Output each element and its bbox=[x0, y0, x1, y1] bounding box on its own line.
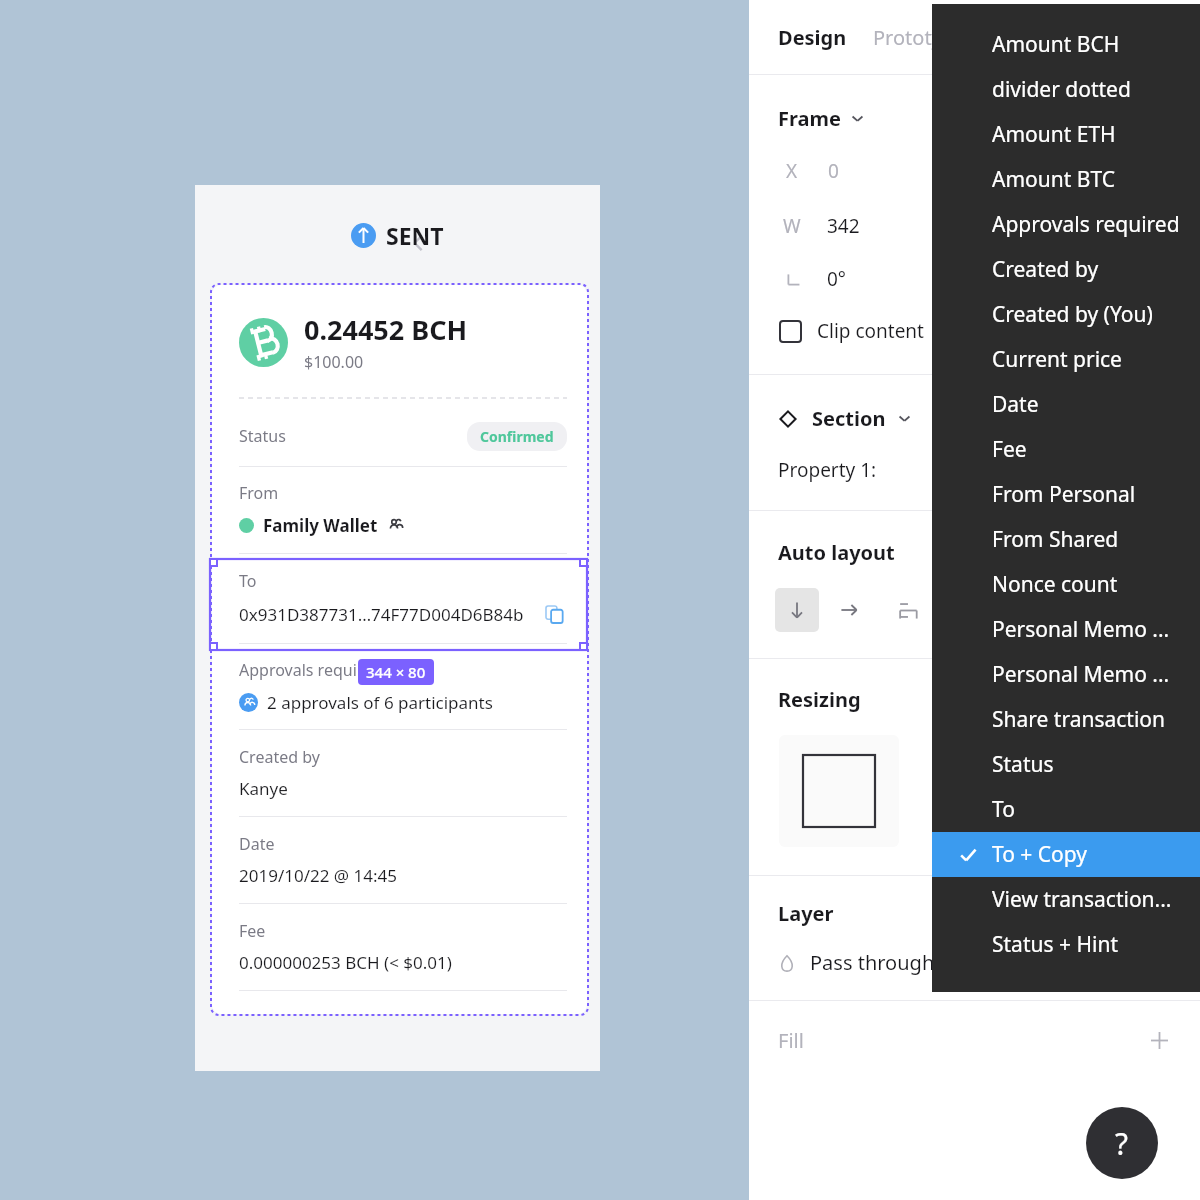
button[interactable]: Date bbox=[212, 817, 587, 904]
staticText: W bbox=[783, 213, 801, 239]
staticText: Date bbox=[992, 390, 1039, 419]
staticText: To bbox=[992, 795, 1015, 824]
staticText: 0.000000253 BCH (< $0.01) bbox=[239, 951, 452, 974]
button[interactable]: divider dotted bbox=[932, 67, 1200, 112]
staticText: $100.00 bbox=[304, 351, 364, 373]
button[interactable]: Help bbox=[1086, 1107, 1158, 1179]
staticText: Status bbox=[992, 750, 1054, 779]
button[interactable]: Copy address bbox=[541, 601, 567, 627]
staticText: Created by bbox=[992, 255, 1099, 284]
staticText: From Personal bbox=[992, 480, 1136, 509]
button[interactable]: Back bbox=[401, 225, 437, 261]
button[interactable]: Design bbox=[778, 24, 847, 51]
staticText: Status bbox=[239, 425, 286, 447]
staticText: Property 1: bbox=[778, 457, 877, 483]
button[interactable]: Approvals required bbox=[212, 644, 587, 730]
staticText: 342 bbox=[827, 213, 860, 239]
staticText: Design bbox=[778, 24, 847, 51]
button[interactable]: To + Copy bbox=[932, 832, 1200, 877]
button[interactable]: From Shared bbox=[932, 517, 1200, 562]
staticText: Fee bbox=[992, 435, 1027, 464]
staticText: 0x931D387731…74F77D004D6B84b bbox=[239, 603, 524, 626]
staticText: divider dotted bbox=[992, 75, 1131, 104]
staticText: Auto layout bbox=[778, 539, 895, 566]
staticText: 2019/10/22 @ 14:45 bbox=[239, 864, 398, 887]
button[interactable]: To bbox=[212, 554, 587, 644]
button[interactable]: View transaction... bbox=[932, 877, 1200, 922]
button[interactable]: Amount BCH bbox=[932, 22, 1200, 67]
staticText: Share transaction bbox=[992, 705, 1166, 734]
button[interactable]: Personal Memo ... bbox=[932, 652, 1200, 697]
button[interactable]: Current price bbox=[932, 337, 1200, 382]
staticText: Clip content bbox=[817, 318, 924, 344]
staticText: 2 approvals of 6 participants bbox=[267, 691, 493, 714]
staticText: Approvals required bbox=[992, 210, 1180, 239]
staticText: Status + Hint bbox=[992, 930, 1118, 959]
button[interactable] bbox=[780, 321, 801, 342]
staticText: 0.24452 BCH bbox=[304, 311, 468, 348]
staticText: ? bbox=[1115, 1123, 1129, 1164]
button[interactable]: Horizontal layout bbox=[827, 588, 871, 632]
staticText: Nonce count bbox=[992, 570, 1118, 599]
staticText: SENT bbox=[386, 220, 444, 251]
staticText: Section bbox=[812, 405, 886, 432]
staticText: Resizing bbox=[778, 686, 861, 713]
staticText: From Shared bbox=[992, 525, 1119, 554]
button[interactable] bbox=[779, 735, 899, 847]
staticText: X bbox=[786, 158, 798, 184]
button[interactable]: Amount ETH bbox=[932, 112, 1200, 157]
staticText: Current price bbox=[992, 345, 1122, 374]
button[interactable]: From Personal bbox=[932, 472, 1200, 517]
button[interactable]: Alignment bbox=[885, 588, 929, 632]
button[interactable]: Personal Memo ... bbox=[932, 607, 1200, 652]
button[interactable]: Status bbox=[932, 742, 1200, 787]
staticText: Created by (You) bbox=[992, 300, 1153, 329]
button[interactable]: Approvals required bbox=[932, 202, 1200, 247]
button[interactable]: Share transaction bbox=[932, 697, 1200, 742]
button[interactable]: Pass through bbox=[749, 949, 1200, 976]
staticText: Fill bbox=[778, 1027, 804, 1054]
button[interactable]: Fee bbox=[932, 427, 1200, 472]
button[interactable]: Prototype bbox=[873, 24, 966, 51]
staticText: Amount ETH bbox=[992, 120, 1116, 149]
button[interactable]: Amount BTC bbox=[932, 157, 1200, 202]
staticText: Frame bbox=[778, 105, 841, 132]
button[interactable]: Status + Hint bbox=[932, 922, 1200, 967]
staticText: Pass through bbox=[810, 949, 935, 976]
button[interactable]: Created by (You) bbox=[932, 292, 1200, 337]
staticText: Kanye bbox=[239, 777, 288, 800]
button[interactable]: Created by bbox=[212, 730, 587, 817]
staticText: 0 bbox=[828, 158, 839, 184]
staticText: Fee bbox=[239, 920, 266, 942]
staticText: Family Wallet bbox=[263, 514, 378, 537]
staticText: Layer bbox=[778, 900, 834, 927]
staticText: Created by bbox=[239, 746, 320, 768]
staticText: 344 × 80 bbox=[366, 662, 426, 682]
button[interactable]: From bbox=[212, 467, 587, 554]
staticText: To bbox=[239, 570, 257, 592]
staticText: 0° bbox=[827, 266, 847, 292]
staticText: Date bbox=[239, 833, 275, 855]
staticText: 100% bbox=[1071, 949, 1122, 976]
staticText: View transaction... bbox=[992, 885, 1172, 914]
button[interactable]: To bbox=[932, 787, 1200, 832]
button[interactable]: Nonce count bbox=[932, 562, 1200, 607]
staticText: From bbox=[239, 482, 279, 504]
staticText: Approvals required bbox=[239, 659, 382, 681]
staticText: Confirmed bbox=[480, 427, 554, 446]
staticText: Amount BCH bbox=[992, 30, 1120, 59]
staticText: Prototype bbox=[873, 24, 966, 51]
staticText: Personal Memo ... bbox=[992, 615, 1170, 644]
button[interactable]: Vertical layout bbox=[775, 588, 819, 632]
button[interactable]: Status bbox=[212, 419, 587, 467]
button[interactable]: Created by bbox=[932, 247, 1200, 292]
staticText: To + Copy bbox=[992, 840, 1088, 869]
staticText: Personal Memo ... bbox=[992, 660, 1170, 689]
staticText: Amount BTC bbox=[992, 165, 1115, 194]
button[interactable]: Date bbox=[932, 382, 1200, 427]
button[interactable]: Fee bbox=[212, 904, 587, 991]
